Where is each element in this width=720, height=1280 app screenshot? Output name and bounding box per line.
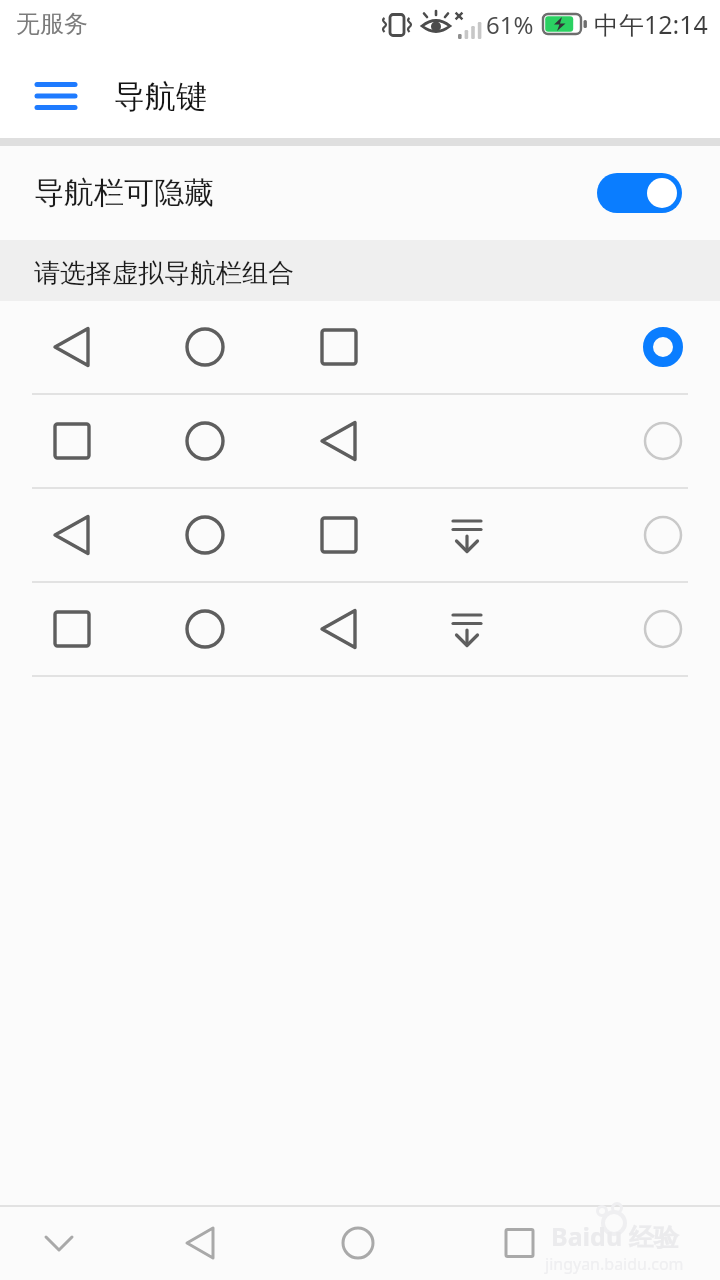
button[interactable] [326,1211,390,1275]
button[interactable] [0,583,720,677]
staticText: 导航键 [114,77,207,116]
button[interactable]: 导航栏可隐藏 [0,146,720,240]
staticText: 61% [486,8,534,41]
staticText: 请选择虚拟导航栏组合 [34,257,294,290]
button[interactable] [169,1211,233,1275]
button[interactable] [0,395,720,489]
button[interactable] [0,489,720,583]
staticText: Baidu 经验 [551,1219,679,1253]
button[interactable] [597,173,682,213]
button[interactable] [24,61,88,125]
staticText: 导航栏可隐藏 [34,174,214,212]
button[interactable] [0,301,720,395]
staticText: jingyan.baidu.com [545,1253,684,1275]
staticText: 中午12:14 [594,7,708,41]
staticText: 无服务 [16,9,88,39]
button[interactable] [487,1211,551,1275]
button[interactable] [27,1211,91,1275]
